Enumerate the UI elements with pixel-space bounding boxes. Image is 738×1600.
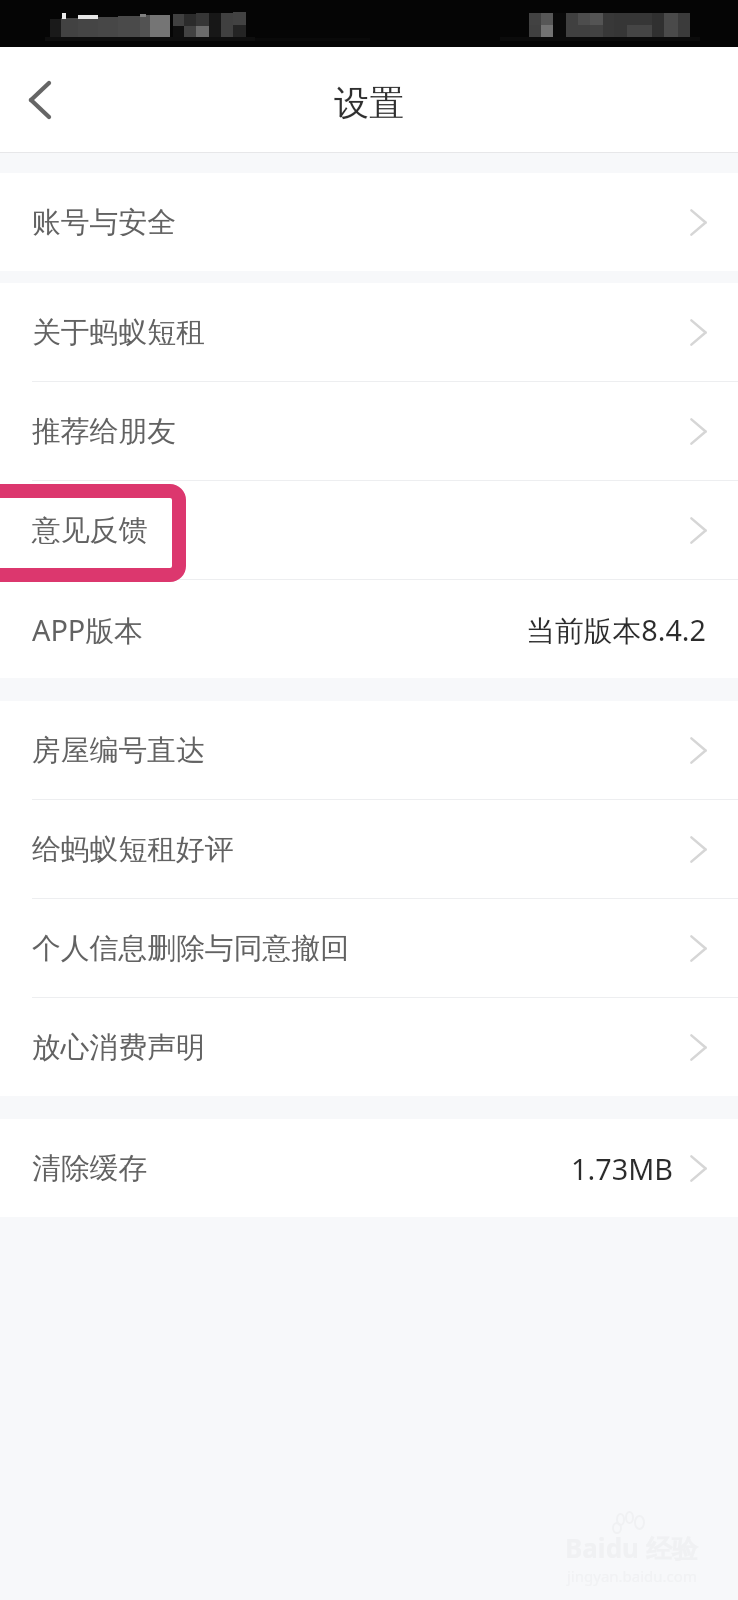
button[interactable]: 意见反馈 (0, 481, 738, 579)
button[interactable]: 房屋编号直达 (0, 701, 738, 799)
staticText: 给蚂蚁短租好评 (32, 831, 234, 867)
staticText: 设置 (334, 81, 404, 125)
staticText: 房屋编号直达 (32, 732, 205, 768)
staticText: Baidu 经验 (565, 1530, 698, 1566)
staticText: 关于蚂蚁短租 (32, 314, 205, 350)
staticText: 当前版本8.4.2 (526, 610, 707, 649)
button[interactable]: 关于蚂蚁短租 (0, 283, 738, 381)
button[interactable]: 给蚂蚁短租好评 (0, 800, 738, 898)
button[interactable]: Back (0, 60, 80, 140)
staticText: 清除缓存 (32, 1150, 148, 1186)
button[interactable]: 清除缓存 (0, 1119, 738, 1217)
staticText: 账号与安全 (32, 204, 176, 240)
staticText: 个人信息删除与同意撤回 (32, 930, 349, 966)
button[interactable]: 放心消费声明 (0, 998, 738, 1096)
button[interactable]: 推荐给朋友 (0, 382, 738, 480)
staticText: 1.73MB (571, 1149, 673, 1188)
staticText: 放心消费声明 (32, 1029, 205, 1065)
button[interactable]: 账号与安全 (0, 173, 738, 271)
staticText: 推荐给朋友 (32, 413, 176, 449)
staticText: APP版本 (32, 610, 143, 649)
staticText: 意见反馈 (32, 512, 148, 548)
button[interactable]: 个人信息删除与同意撤回 (0, 899, 738, 997)
